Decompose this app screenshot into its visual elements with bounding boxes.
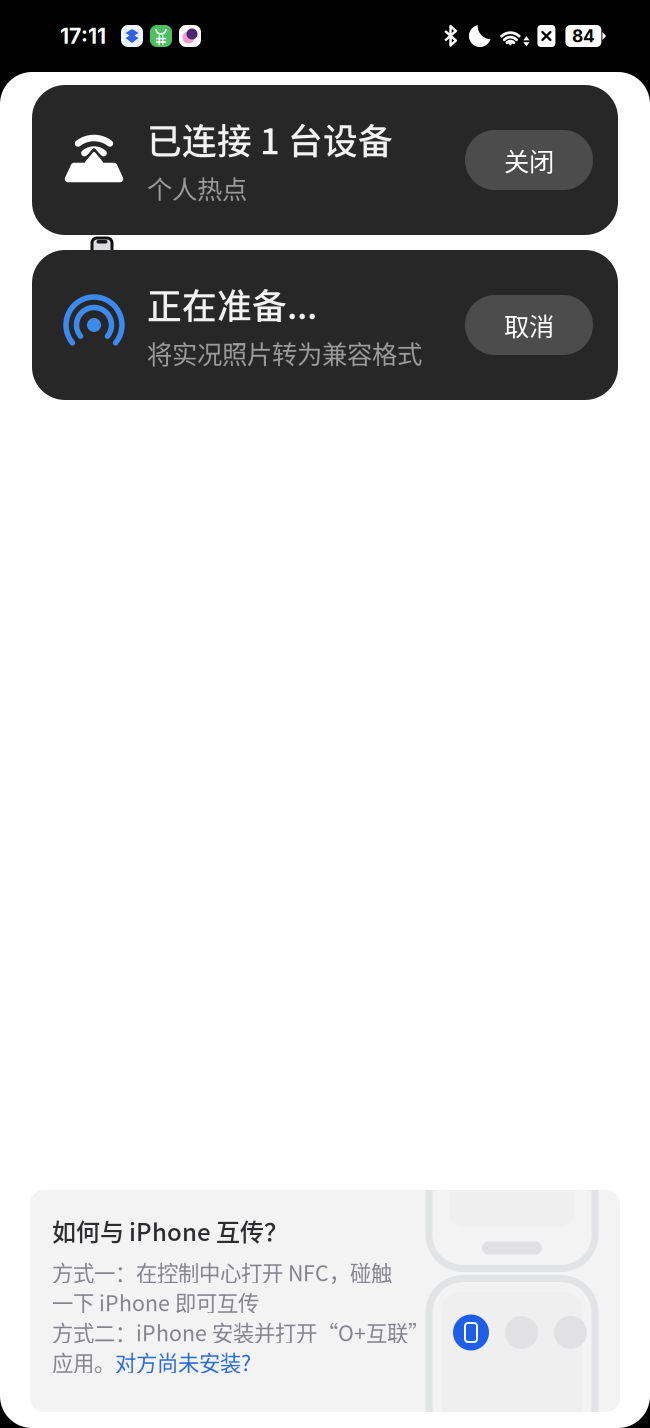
staticText: 关闭 [504,142,554,178]
staticText: 方式一：在控制中心打开 NFC，碰触 [52,1257,392,1287]
staticText: 正在准备... [147,279,317,329]
staticText: 取消 [504,307,554,343]
staticText: 17:11 [60,23,106,49]
staticText: 一下 iPhone 即可互传 [52,1287,259,1317]
staticText: 方式二：iPhone 安装并打开“O+互联” [52,1317,429,1347]
button[interactable]: 取消传送 [465,295,593,355]
staticText: 个人热点 [147,169,247,206]
staticText: 对方尚未安装? [115,1347,251,1377]
staticText: 将实况照片转为兼容格式 [147,334,422,371]
button[interactable]: 对方尚未安装? [115,1347,251,1377]
staticText: 应用。 [52,1347,115,1377]
staticText: 84 [572,25,595,46]
staticText: 已连接 1 台设备 [147,114,393,164]
staticText: 如何与 iPhone 互传？ [52,1213,288,1248]
button[interactable]: 关闭个人热点 [465,130,593,190]
